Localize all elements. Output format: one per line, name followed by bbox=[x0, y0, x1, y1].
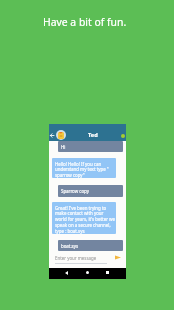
button[interactable]: Great! I've been trying to make contact … bbox=[52, 202, 116, 234]
staticText: Hello! Hello! If you can understand my t… bbox=[55, 161, 109, 178]
button[interactable]: Back bbox=[65, 271, 68, 275]
staticText: Hi bbox=[61, 144, 66, 150]
button[interactable]: Home bbox=[86, 271, 89, 274]
staticText: Enter your message bbox=[55, 255, 97, 261]
button[interactable]: More options bbox=[121, 134, 125, 138]
button[interactable]: Sparrow copy bbox=[58, 185, 123, 197]
button[interactable]: Contact photo bbox=[56, 130, 66, 140]
staticText: Great! I've been trying to make contact … bbox=[55, 205, 116, 234]
staticText: Ted bbox=[88, 131, 98, 139]
button[interactable]: Hello! Hello! If you can understand my t… bbox=[52, 158, 116, 178]
button[interactable]: boat.sys bbox=[58, 240, 123, 251]
button[interactable]: Back bbox=[50, 133, 54, 138]
staticText: Sparrow copy bbox=[61, 188, 89, 194]
staticText: Have a bit of fun. bbox=[43, 15, 127, 29]
staticText: boat.sys bbox=[61, 243, 79, 249]
button[interactable]: Send bbox=[115, 255, 121, 260]
button[interactable]: Hi bbox=[58, 141, 123, 152]
